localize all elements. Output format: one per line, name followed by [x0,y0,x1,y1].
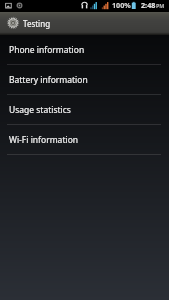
staticText: Wi-Fi information [9,134,79,146]
staticText: Usage statistics [9,104,71,116]
button[interactable]: Phone information [0,35,169,65]
button[interactable]: Wi-Fi information [0,125,169,155]
button[interactable]: Usage statistics [0,95,169,125]
staticText: PM [156,2,165,9]
staticText: 100% [112,0,131,10]
staticText: Phone information [9,44,85,56]
staticText: 2:48 [141,0,156,10]
staticText: Testing [23,18,51,29]
button[interactable]: Battery information [0,65,169,95]
staticText: Battery information [9,74,88,86]
